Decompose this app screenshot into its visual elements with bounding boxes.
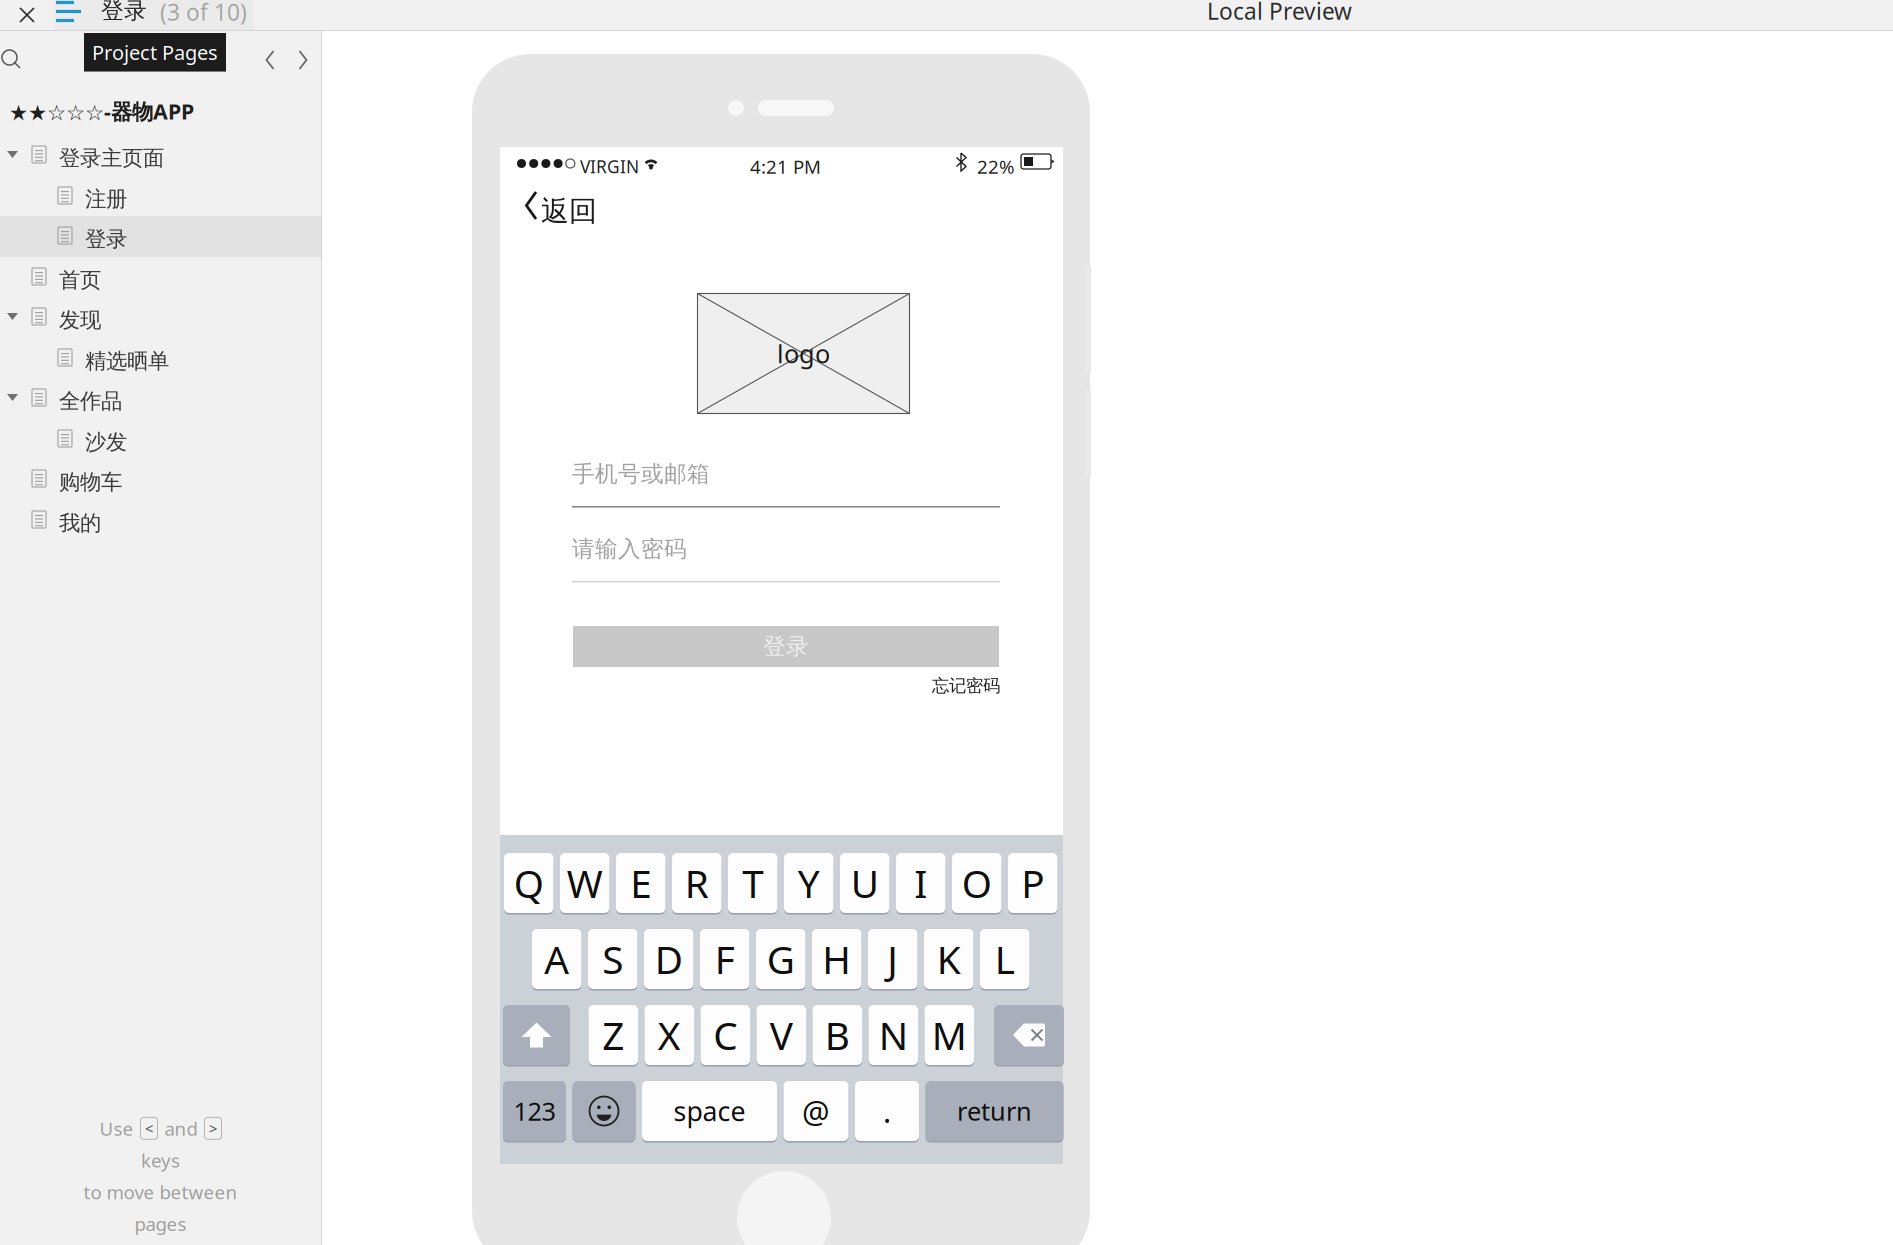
button[interactable]: S <box>588 929 637 989</box>
staticText: K <box>937 933 961 985</box>
staticText: VIRGIN <box>580 155 639 178</box>
staticText: to move between <box>83 1180 237 1204</box>
staticText: (3 of 10) <box>160 0 247 27</box>
staticText: 我的 <box>59 510 101 536</box>
staticText: 注册 <box>85 186 127 212</box>
staticText: E <box>630 857 651 909</box>
button[interactable]: J <box>868 929 917 989</box>
button[interactable]: F <box>700 929 749 989</box>
staticText: R <box>685 857 709 909</box>
button[interactable]: space <box>642 1081 777 1141</box>
staticText: > <box>209 1119 217 1138</box>
button[interactable]: Search <box>0 45 34 75</box>
staticText: T <box>742 857 763 909</box>
staticText: O <box>962 857 992 909</box>
button[interactable]: C <box>700 1005 750 1065</box>
button[interactable]: Y <box>784 853 833 913</box>
button[interactable]: X <box>644 1005 694 1065</box>
staticText: 忘记密码 <box>932 675 1000 696</box>
staticText: logo <box>777 337 830 370</box>
button[interactable]: D <box>644 929 693 989</box>
button[interactable]: 登录 <box>0 216 321 257</box>
staticText: keys <box>141 1148 180 1173</box>
button[interactable]: Z <box>588 1005 638 1065</box>
staticText: U <box>851 857 879 909</box>
staticText: H <box>822 933 851 985</box>
button[interactable]: V <box>756 1005 806 1065</box>
staticText: I <box>914 857 927 909</box>
button[interactable]: 全作品 <box>0 378 321 419</box>
button[interactable]: 首页 <box>0 257 321 298</box>
button[interactable]: Close <box>0 0 54 30</box>
button[interactable]: return <box>925 1081 1063 1141</box>
staticText: Local Preview <box>1207 0 1352 26</box>
button[interactable]: Next page <box>288 43 318 77</box>
button[interactable]: W <box>560 853 609 913</box>
button[interactable]: G <box>756 929 805 989</box>
staticText: 发现 <box>59 307 101 333</box>
button[interactable]: H <box>812 929 861 989</box>
staticText: F <box>715 933 735 985</box>
button[interactable]: @ <box>783 1081 848 1141</box>
staticText: 返回 <box>541 194 597 228</box>
button[interactable]: 忘记密码 <box>860 675 1000 701</box>
staticText: 首页 <box>59 267 101 293</box>
button[interactable]: 精选晒单 <box>0 338 321 379</box>
staticText: ★★☆☆☆-器物APP <box>9 97 194 125</box>
button[interactable]: 我的 <box>0 500 321 541</box>
staticText: Y <box>798 857 820 909</box>
button[interactable]: A <box>532 929 581 989</box>
button[interactable]: N <box>868 1005 918 1065</box>
staticText: 购物车 <box>59 469 122 495</box>
staticText: 手机号或邮箱 <box>572 460 710 488</box>
button[interactable]: Previous page <box>255 43 285 77</box>
staticText: J <box>887 933 898 985</box>
button[interactable]: 购物车 <box>0 459 321 500</box>
button[interactable]: 登录 <box>54 0 254 30</box>
button[interactable]: U <box>840 853 889 913</box>
staticText: 登录 <box>763 633 809 660</box>
button[interactable]: 发现 <box>0 297 321 338</box>
staticText: P <box>1021 857 1044 909</box>
staticText: L <box>995 933 1015 985</box>
staticText: 精选晒单 <box>85 348 169 374</box>
button[interactable]: R <box>672 853 721 913</box>
staticText: 22% <box>977 154 1015 179</box>
button[interactable]: T <box>728 853 777 913</box>
button[interactable]: P <box>1008 853 1057 913</box>
button[interactable]: B <box>812 1005 862 1065</box>
button[interactable]: Emoji <box>572 1081 635 1141</box>
staticText: B <box>825 1009 850 1061</box>
button[interactable]: I <box>896 853 945 913</box>
staticText: space <box>673 1093 745 1129</box>
button[interactable]: . <box>855 1081 919 1141</box>
staticText: Project Pages <box>92 39 218 66</box>
staticText: W <box>567 857 603 909</box>
button[interactable]: Delete <box>994 1005 1064 1065</box>
button[interactable]: E <box>616 853 665 913</box>
button[interactable]: 123 <box>503 1081 566 1141</box>
button[interactable]: K <box>924 929 973 989</box>
staticText: 123 <box>513 1094 555 1128</box>
button[interactable]: 沙发 <box>0 419 321 460</box>
button[interactable]: 注册 <box>0 176 321 217</box>
button[interactable]: Q <box>504 853 553 913</box>
button[interactable]: O <box>952 853 1001 913</box>
staticText: pages <box>134 1211 186 1236</box>
staticText: 全作品 <box>59 388 122 414</box>
button[interactable]: 返回 <box>518 185 608 227</box>
staticText: Use <box>99 1116 133 1141</box>
button[interactable]: L <box>980 929 1029 989</box>
staticText: D <box>655 933 683 985</box>
staticText: X <box>658 1009 681 1061</box>
button[interactable]: 登录主页面 <box>0 135 321 176</box>
staticText: M <box>932 1009 967 1061</box>
button[interactable]: Shift <box>503 1005 570 1065</box>
staticText: G <box>767 933 795 985</box>
staticText: return <box>957 1094 1032 1128</box>
button[interactable]: 登录 <box>573 626 999 667</box>
staticText: N <box>879 1009 908 1061</box>
button[interactable]: M <box>924 1005 974 1065</box>
staticText: Q <box>514 857 544 909</box>
staticText: V <box>770 1009 793 1061</box>
